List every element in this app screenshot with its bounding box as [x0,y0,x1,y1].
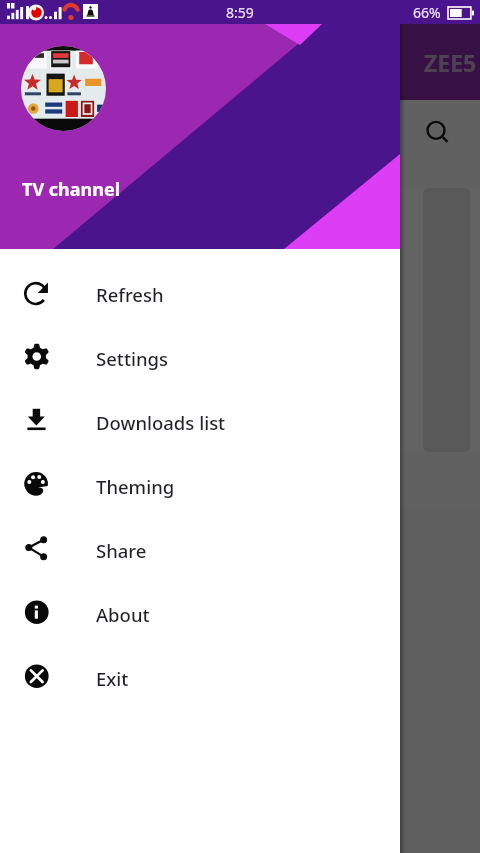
button[interactable]: Share [0,517,400,581]
button[interactable]: Close navigation drawer [0,0,480,853]
staticText: Exit [96,666,129,691]
staticText: ZEE5 [424,47,477,78]
staticText: Share [96,538,147,563]
staticText: About [96,602,150,627]
button[interactable]: Settings [0,325,400,389]
staticText: 66% [413,3,441,22]
button[interactable]: Search [414,109,458,153]
staticText: Settings [96,346,169,371]
staticText: 8:59 [226,3,254,22]
staticText: Theming [96,474,175,499]
button[interactable]: Refresh [0,261,400,325]
button[interactable]: About [0,581,400,645]
button[interactable]: Profile picture [21,46,106,131]
staticText: Downloads list [96,410,226,435]
button[interactable]: Exit [0,645,400,709]
staticText: Refresh [96,282,164,307]
staticText: TV channel [22,177,121,202]
button[interactable]: Theming [0,453,400,517]
button[interactable]: Downloads list [0,389,400,453]
